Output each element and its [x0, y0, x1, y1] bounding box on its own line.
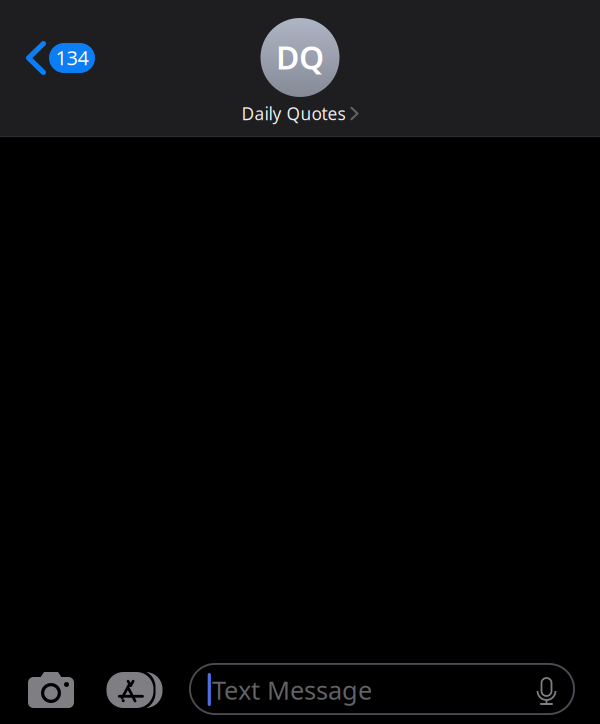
button[interactable]: Back to Messages, 134 unread	[16, 32, 105, 84]
staticText: Daily Quotes	[241, 102, 345, 125]
button[interactable]: Text Message input field	[189, 663, 575, 715]
staticText: 134	[55, 44, 88, 71]
staticText: DQ	[276, 36, 324, 78]
button[interactable]: Daily Quotes, conversation details	[170, 18, 430, 125]
button[interactable]: Camera	[28, 672, 74, 708]
button[interactable]: Apps	[102, 674, 162, 710]
staticText: Text Message	[212, 673, 372, 707]
